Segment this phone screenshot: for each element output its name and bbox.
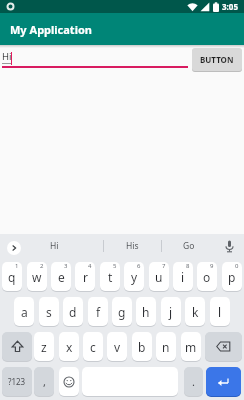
button[interactable]: g — [112, 297, 132, 326]
button[interactable]: u — [149, 262, 169, 291]
staticText: o — [203, 269, 211, 285]
staticText: Hi — [50, 240, 59, 252]
staticText: 3:05 — [222, 1, 238, 12]
staticText: d — [69, 304, 77, 320]
staticText: ?123 — [8, 376, 26, 387]
staticText: f — [96, 304, 101, 320]
button[interactable]: His — [110, 234, 154, 258]
staticText: a — [21, 304, 28, 320]
staticText: 7 — [162, 262, 166, 270]
button[interactable]: w — [27, 262, 47, 291]
staticText: His — [126, 240, 139, 252]
button[interactable]: l — [210, 297, 230, 326]
staticText: 5 — [113, 262, 117, 270]
button[interactable]: m — [181, 332, 201, 361]
staticText: z — [41, 339, 47, 355]
button[interactable]: j — [161, 297, 181, 326]
button[interactable]: n — [156, 332, 176, 361]
staticText: g — [118, 304, 126, 320]
staticText: y — [131, 269, 138, 285]
staticText: e — [58, 269, 65, 285]
staticText: h — [142, 304, 150, 320]
button[interactable]: Hi — [36, 234, 72, 258]
staticText: 9 — [210, 262, 214, 270]
button[interactable]: q — [2, 262, 22, 291]
button[interactable]: p — [222, 262, 242, 291]
staticText: m — [185, 339, 197, 355]
staticText: k — [192, 304, 199, 320]
button[interactable]: s — [39, 297, 59, 326]
button[interactable]: t — [100, 262, 120, 291]
staticText: Go — [183, 240, 195, 252]
staticText: u — [155, 269, 163, 285]
staticText: t — [108, 269, 113, 285]
button[interactable] — [205, 332, 242, 361]
staticText: , — [43, 374, 46, 389]
staticText: v — [114, 339, 121, 355]
button[interactable] — [59, 367, 79, 396]
staticText: b — [138, 339, 146, 355]
button[interactable] — [206, 367, 241, 396]
staticText: 1 — [15, 262, 19, 270]
staticText: q — [8, 269, 16, 285]
button[interactable]: , — [34, 367, 54, 396]
staticText: 2 — [40, 262, 44, 270]
button[interactable]: i — [173, 262, 193, 291]
staticText: Hi — [2, 50, 12, 63]
button[interactable]: d — [63, 297, 83, 326]
button[interactable]: Go — [167, 234, 211, 258]
staticText: x — [66, 339, 73, 355]
staticText: c — [90, 339, 96, 355]
button[interactable]: k — [185, 297, 205, 326]
button[interactable]: x — [59, 332, 79, 361]
staticText: n — [162, 339, 170, 355]
staticText: 3 — [64, 262, 68, 270]
button[interactable]: b — [132, 332, 152, 361]
button[interactable]: f — [88, 297, 108, 326]
button[interactable]: y — [124, 262, 144, 291]
button[interactable]: o — [197, 262, 217, 291]
staticText: i — [181, 269, 185, 285]
button[interactable]: a — [14, 297, 34, 326]
staticText: p — [228, 269, 236, 285]
button[interactable]: r — [75, 262, 95, 291]
staticText: My Application — [10, 22, 92, 37]
staticText: j — [169, 304, 173, 320]
button[interactable]: ?123 — [2, 367, 32, 396]
staticText: 6 — [137, 262, 141, 270]
button[interactable]: My Application — [0, 13, 244, 45]
staticText: . — [192, 374, 195, 389]
staticText: 8 — [186, 262, 190, 270]
button[interactable]: c — [83, 332, 103, 361]
button[interactable]: h — [136, 297, 156, 326]
staticText: s — [46, 304, 52, 320]
staticText: w — [32, 269, 42, 285]
button[interactable]: . — [184, 367, 203, 396]
button[interactable] — [7, 241, 21, 255]
button[interactable]: v — [107, 332, 127, 361]
button[interactable]: e — [51, 262, 71, 291]
staticText: 0 — [235, 262, 239, 270]
staticText: r — [83, 269, 88, 285]
button[interactable] — [2, 332, 32, 361]
staticText: 4 — [88, 262, 92, 270]
staticText: BUTTON — [200, 54, 234, 65]
button[interactable]: z — [34, 332, 54, 361]
button[interactable]: BUTTON — [192, 48, 242, 71]
staticText: l — [218, 304, 222, 320]
